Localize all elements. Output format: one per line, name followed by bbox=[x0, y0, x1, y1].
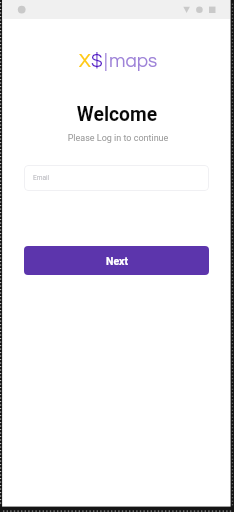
staticText: | bbox=[104, 51, 108, 71]
staticText: Welcome bbox=[0, 103, 234, 126]
staticText: maps bbox=[109, 51, 158, 71]
staticText: Please Log in to continue bbox=[1, 133, 234, 144]
staticText: Next bbox=[106, 255, 128, 267]
button[interactable]: Next bbox=[24, 246, 209, 275]
button[interactable]: Email bbox=[24, 165, 209, 191]
staticText: X bbox=[79, 51, 91, 71]
staticText: $ bbox=[91, 51, 103, 71]
staticText: Email bbox=[33, 174, 50, 182]
